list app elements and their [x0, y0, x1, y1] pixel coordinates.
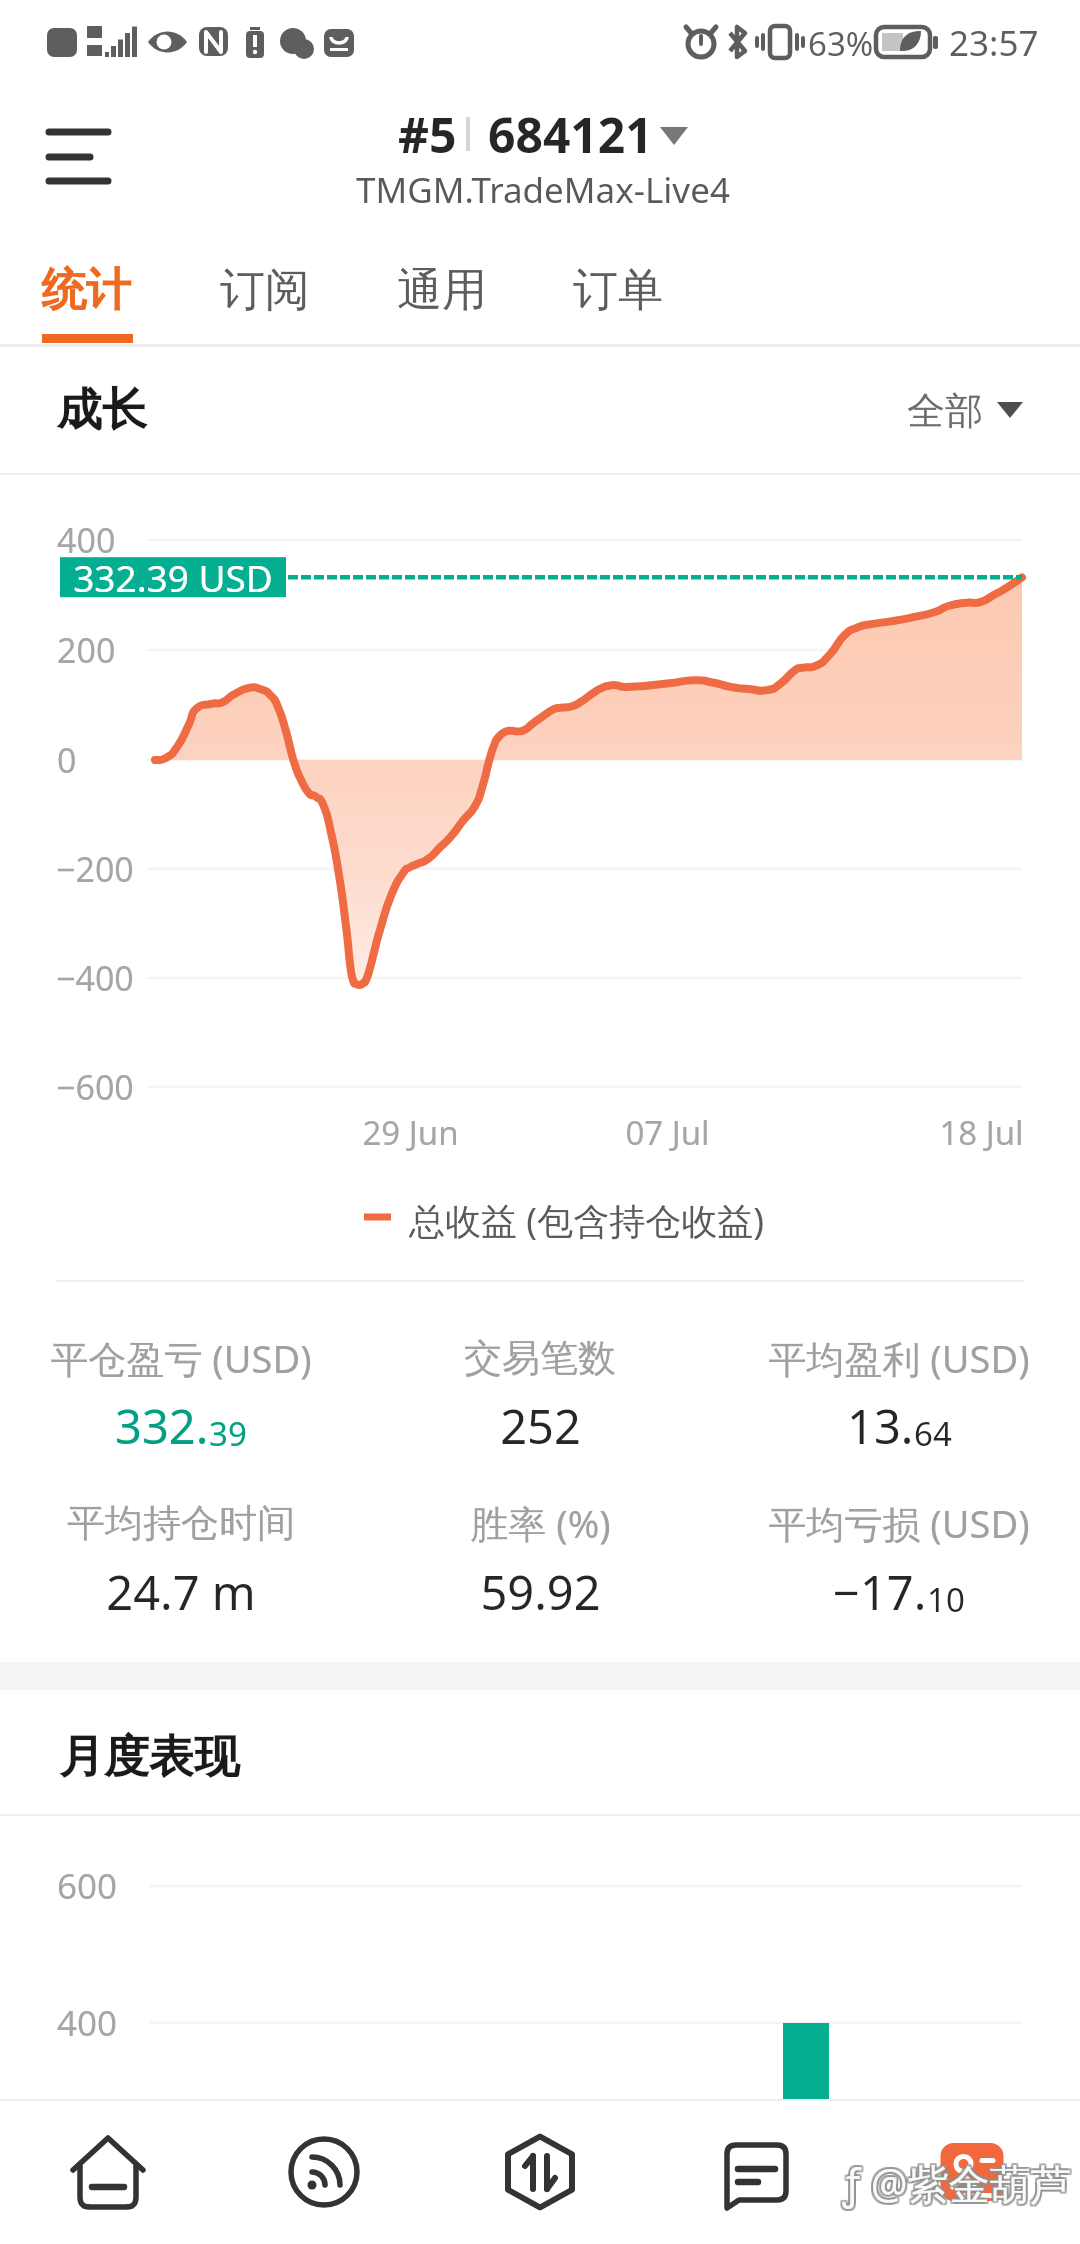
staticText: 10	[927, 1577, 965, 1622]
staticText: 684121	[488, 102, 653, 167]
staticText: 订单	[573, 262, 663, 319]
staticText: 29 Jun	[362, 1110, 459, 1155]
staticText: ƒ @紫金葫芦	[843, 2153, 1072, 2209]
button[interactable]: Profile	[864, 2099, 1080, 2244]
staticText: 成长	[57, 382, 147, 439]
staticText: −400	[56, 955, 134, 1001]
button[interactable]	[186, 240, 346, 340]
staticText: ƒ @紫金葫芦	[843, 2157, 1072, 2213]
staticText: ƒ @紫金葫芦	[845, 2155, 1074, 2211]
staticText: ƒ @紫金葫芦	[843, 2155, 1072, 2211]
staticText: 平均亏损 (USD)	[768, 1497, 1030, 1549]
staticText: 订阅	[220, 262, 310, 319]
staticText: 通用	[397, 262, 487, 319]
staticText: 月度表现	[59, 1729, 239, 1786]
staticText: 平仓盈亏 (USD)	[50, 1332, 312, 1384]
staticText: 统计	[41, 262, 131, 319]
staticText: 400	[57, 517, 116, 563]
button[interactable]: Trade	[432, 2099, 648, 2244]
staticText: 平均盈利 (USD)	[768, 1332, 1030, 1384]
staticText: 全部	[907, 387, 983, 435]
staticText: −600	[56, 1064, 134, 1110]
button[interactable]: Home	[0, 2099, 216, 2244]
staticText: 总收益 (包含持仓收益)	[409, 1196, 764, 1245]
button[interactable]: Messages	[648, 2099, 864, 2244]
staticText: 200	[57, 627, 116, 673]
button[interactable]: Signals	[216, 2099, 432, 2244]
staticText: 0	[57, 737, 77, 783]
button[interactable]	[880, 366, 1040, 456]
staticText: 13.	[847, 1394, 914, 1458]
staticText: ƒ @紫金葫芦	[841, 2153, 1070, 2209]
staticText: TMGM.TradeMax-Live4	[356, 166, 730, 214]
staticText: ƒ @紫金葫芦	[845, 2157, 1074, 2213]
staticText: 07 Jul	[625, 1110, 710, 1155]
staticText: −200	[56, 846, 134, 892]
staticText: 39	[209, 1411, 247, 1456]
staticText: −17.	[833, 1560, 927, 1624]
staticText: 平均持仓时间	[67, 1499, 295, 1547]
staticText: 332.	[115, 1394, 209, 1458]
staticText: 23:57	[949, 19, 1039, 67]
staticText: 59.92	[480, 1560, 601, 1624]
staticText: 64	[914, 1411, 952, 1456]
staticText: 胜率 (%)	[470, 1497, 611, 1549]
button[interactable]	[539, 240, 699, 340]
staticText: 400	[57, 1999, 118, 2047]
staticText: 18 Jul	[939, 1110, 1024, 1155]
staticText: #5	[398, 102, 457, 167]
button[interactable]	[363, 240, 523, 340]
staticText: ƒ @紫金葫芦	[841, 2155, 1070, 2211]
staticText: 63%	[808, 21, 874, 66]
staticText: 24.7 m	[106, 1560, 256, 1624]
staticText: 交易笔数	[464, 1334, 616, 1382]
staticText: ƒ @紫金葫芦	[841, 2157, 1070, 2213]
button[interactable]	[7, 240, 167, 340]
staticText: 332.39 USD	[73, 552, 273, 602]
staticText: 252	[500, 1394, 581, 1458]
staticText: ƒ @紫金葫芦	[845, 2153, 1074, 2209]
staticText: 600	[57, 1862, 118, 1910]
